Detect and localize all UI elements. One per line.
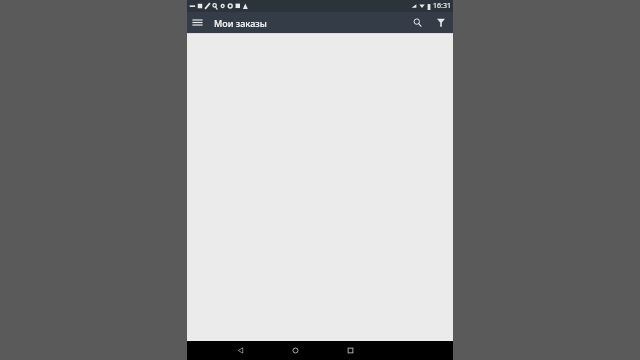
button[interactable]: Recent apps [341,341,360,360]
button[interactable]: Search [407,12,428,33]
button[interactable]: Open navigation menu [187,12,208,33]
button[interactable]: Home [286,341,305,360]
button[interactable]: Back [231,341,250,360]
staticText: Мои заказы [214,17,267,29]
button[interactable]: Filter [430,12,451,33]
staticText: 16:31 [433,1,451,11]
